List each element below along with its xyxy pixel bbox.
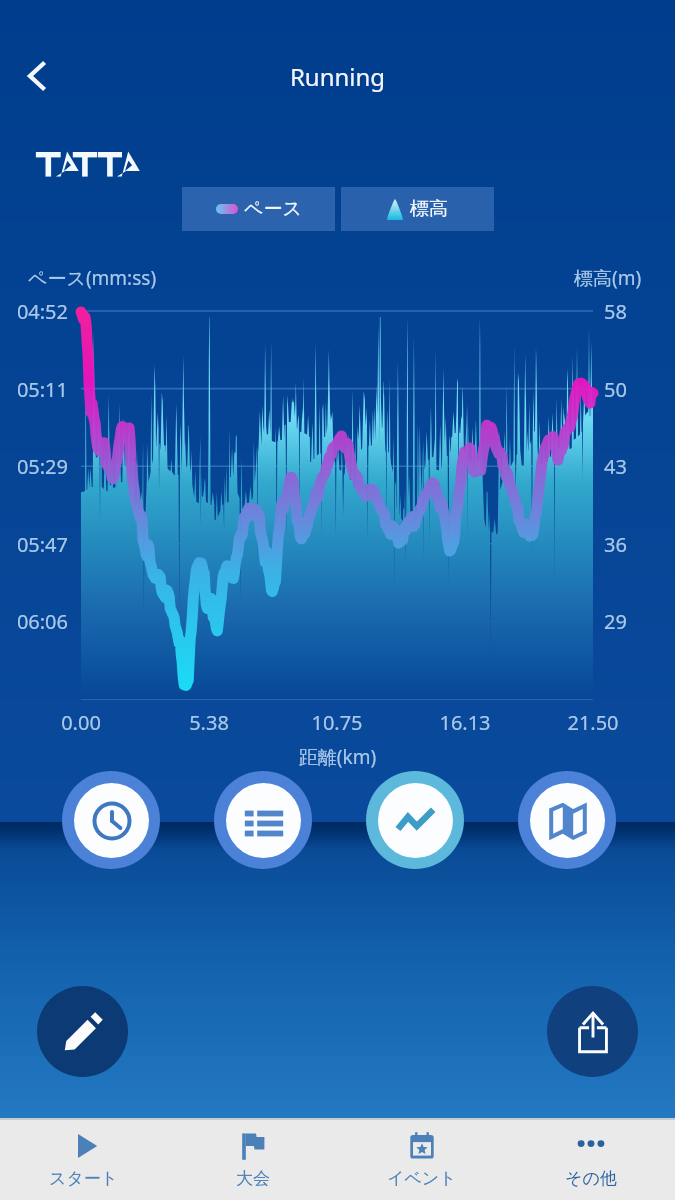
button[interactable]: Share [547,986,638,1077]
staticText: 05:29 [0,453,68,480]
staticText: 標高(m) [574,265,642,291]
button[interactable]: Splits [214,771,312,869]
staticText: 5.38 [159,709,259,736]
staticText: 36 [604,531,627,558]
staticText: 04:52 [0,298,68,325]
button[interactable]: 標高 [341,187,494,231]
staticText: 29 [604,608,627,635]
button[interactable]: イベント [337,1120,506,1200]
staticText: 21.50 [543,709,643,736]
staticText: 標高 [410,197,448,221]
button[interactable]: ペース [182,187,335,231]
staticText: ペース [244,197,302,221]
staticText: スタート [49,1168,119,1189]
staticText: 05:47 [0,531,68,558]
staticText: 距離(km) [0,744,675,770]
staticText: 43 [604,453,627,480]
staticText: 58 [604,298,627,325]
staticText: Running [0,60,675,93]
staticText: 05:11 [0,376,68,403]
staticText: 06:06 [0,608,68,635]
button[interactable]: スタート [0,1120,168,1200]
button[interactable]: その他 [506,1120,675,1200]
staticText: 10.75 [287,709,387,736]
staticText: 大会 [236,1168,270,1189]
button[interactable]: Map [518,771,616,869]
button[interactable]: 大会 [168,1120,337,1200]
staticText: ペース(mm:ss) [28,265,157,291]
staticText: 50 [604,376,627,403]
button[interactable]: Back [13,51,63,101]
button[interactable]: Graph [366,771,464,869]
button[interactable]: Edit [37,986,128,1077]
staticText: 0.00 [31,709,131,736]
staticText: イベント [387,1168,457,1189]
staticText: その他 [565,1168,617,1189]
button[interactable]: Duration [62,771,160,869]
staticText: 16.13 [415,709,515,736]
